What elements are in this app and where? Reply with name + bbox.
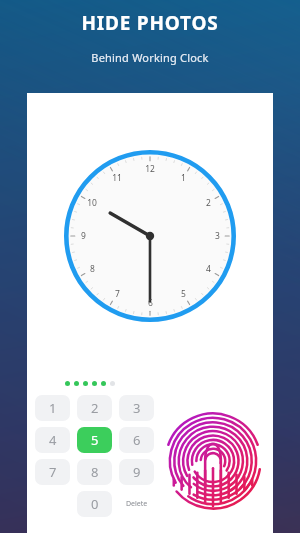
staticText: 5: [181, 288, 186, 300]
button[interactable]: 9: [119, 459, 154, 485]
staticText: 7: [115, 288, 120, 300]
staticText: 1: [181, 172, 186, 184]
staticText: 6: [133, 431, 141, 449]
staticText: 9: [81, 230, 86, 242]
staticText: 10: [87, 197, 97, 209]
button[interactable]: 5: [77, 427, 112, 453]
staticText: 1: [49, 399, 57, 417]
staticText: 6: [148, 297, 153, 309]
staticText: 8: [90, 263, 95, 275]
staticText: 3: [133, 399, 141, 417]
staticText: 4: [49, 431, 57, 449]
staticText: 7: [49, 463, 57, 481]
staticText: 3: [215, 230, 220, 242]
staticText: Behind Working Clock: [91, 50, 209, 65]
button[interactable]: 4: [35, 427, 70, 453]
staticText: 0: [91, 495, 99, 513]
button[interactable]: 3: [119, 395, 154, 421]
button[interactable]: Unlock with fingerprint: [164, 412, 262, 510]
staticText: 8: [91, 463, 99, 481]
button[interactable]: 1: [35, 395, 70, 421]
staticText: 2: [206, 197, 211, 209]
button[interactable]: 0: [77, 491, 112, 517]
staticText: HIDE PHOTOS: [81, 10, 219, 36]
staticText: Delete: [126, 499, 148, 509]
staticText: 12: [145, 163, 155, 175]
staticText: 9: [133, 463, 141, 481]
button[interactable]: Delete: [119, 491, 154, 517]
button[interactable]: 1: [64, 150, 236, 322]
staticText: 4: [206, 263, 211, 275]
staticText: 5: [91, 431, 99, 449]
button[interactable]: 8: [77, 459, 112, 485]
button[interactable]: 2: [77, 395, 112, 421]
button[interactable]: 7: [35, 459, 70, 485]
button[interactable]: 6: [119, 427, 154, 453]
staticText: 11: [112, 172, 122, 184]
staticText: 2: [91, 399, 99, 417]
